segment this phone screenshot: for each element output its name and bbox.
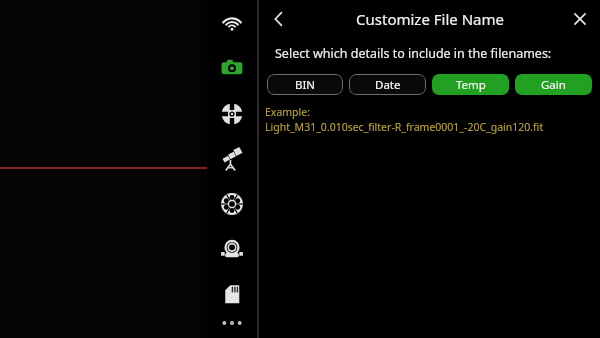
staticText: Light_M31_0.010sec_filter-R_frame0001_-2… bbox=[265, 120, 544, 134]
staticText: Date bbox=[375, 77, 401, 93]
button[interactable]: Focuser bbox=[210, 100, 254, 128]
button[interactable]: Camera bbox=[210, 54, 254, 82]
staticText: Select which details to include in the f… bbox=[275, 45, 552, 62]
staticText: Customize File Name bbox=[356, 9, 504, 29]
button[interactable]: Close bbox=[560, 0, 600, 38]
button[interactable]: Storage bbox=[210, 280, 254, 308]
button[interactable]: BIN bbox=[267, 74, 343, 95]
button[interactable]: More options bbox=[207, 308, 257, 338]
button[interactable]: Wi-Fi bbox=[210, 8, 254, 36]
button[interactable]: Rotator bbox=[210, 236, 254, 264]
staticText: BIN bbox=[295, 77, 316, 93]
button[interactable]: Gain bbox=[515, 74, 592, 95]
button[interactable]: Back bbox=[259, 0, 299, 38]
button[interactable]: Date bbox=[349, 74, 426, 95]
button[interactable]: Temp bbox=[432, 74, 509, 95]
button[interactable]: Telescope mount bbox=[210, 146, 254, 174]
staticText: Gain bbox=[541, 77, 566, 93]
staticText: Temp bbox=[456, 77, 486, 93]
button[interactable]: Filter wheel bbox=[210, 190, 254, 218]
staticText: Example: bbox=[265, 105, 311, 119]
